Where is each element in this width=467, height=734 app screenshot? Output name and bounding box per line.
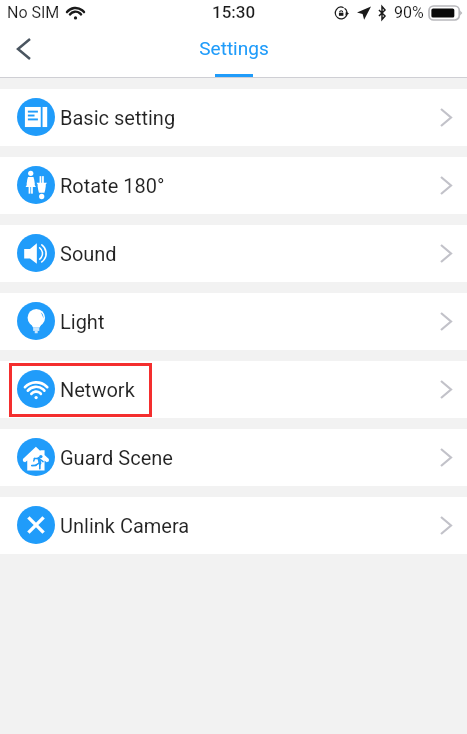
staticText: Sound [60, 242, 117, 265]
button[interactable]: Settings [199, 37, 269, 69]
button[interactable]: Rotate 180° [0, 157, 467, 214]
button[interactable]: Guard Scene [0, 429, 467, 486]
staticText: No SIM [7, 3, 60, 22]
staticText: Guard Scene [60, 446, 173, 469]
staticText: Rotate 180° [60, 174, 165, 197]
staticText: Network [60, 378, 135, 401]
staticText: 90% [394, 3, 424, 22]
staticText: Settings [199, 37, 269, 59]
button[interactable]: Network [0, 361, 467, 418]
button[interactable]: Basic setting [0, 89, 467, 146]
button[interactable]: Back [6, 31, 42, 67]
staticText: 15:30 [212, 2, 256, 22]
button[interactable]: Unlink Camera [0, 497, 467, 554]
button[interactable]: Light [0, 293, 467, 350]
button[interactable]: Sound [0, 225, 467, 282]
staticText: Basic setting [60, 106, 176, 129]
staticText: Light [60, 310, 105, 333]
staticText: Unlink Camera [60, 514, 190, 537]
